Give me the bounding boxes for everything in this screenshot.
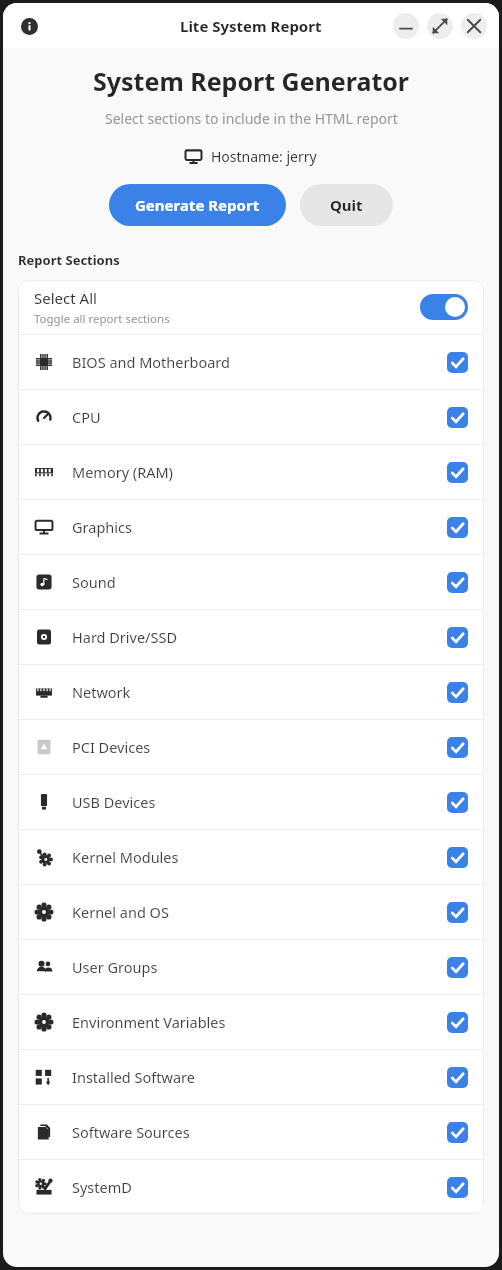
- staticText: Environment Variables: [72, 1012, 447, 1032]
- button[interactable]: Select all: [420, 294, 468, 320]
- button[interactable]: Included: [447, 627, 468, 648]
- button[interactable]: Included: [447, 737, 468, 758]
- staticText: Report Sections: [18, 251, 120, 269]
- button[interactable]: Quit: [300, 184, 393, 226]
- staticText: Graphics: [72, 517, 447, 537]
- button[interactable]: Included: [447, 902, 468, 923]
- button[interactable]: Included: [447, 1067, 468, 1088]
- staticText: Kernel and OS: [72, 902, 447, 922]
- button[interactable]: Included: [447, 1122, 468, 1143]
- staticText: Lite System Report: [180, 16, 322, 36]
- button[interactable]: Network: [18, 665, 484, 719]
- staticText: Select All: [34, 288, 97, 308]
- staticText: BIOS and Motherboard: [72, 352, 447, 372]
- staticText: Installed Software: [72, 1067, 447, 1087]
- button[interactable]: BIOS and Motherboard: [18, 335, 484, 389]
- staticText: Memory (RAM): [72, 462, 447, 482]
- button[interactable]: Generate Report: [109, 184, 286, 226]
- button[interactable]: PCI Devices: [18, 720, 484, 774]
- button[interactable]: Included: [447, 1012, 468, 1033]
- button[interactable]: Included: [447, 407, 468, 428]
- button[interactable]: Software Sources: [18, 1105, 484, 1159]
- button[interactable]: SystemD: [18, 1160, 484, 1214]
- button[interactable]: Maximize: [427, 13, 453, 39]
- button[interactable]: Memory (RAM): [18, 445, 484, 499]
- button[interactable]: Close: [461, 13, 487, 39]
- button[interactable]: Included: [447, 517, 468, 538]
- button[interactable]: Kernel Modules: [18, 830, 484, 884]
- staticText: Hostname: jerry: [211, 147, 317, 166]
- staticText: Select sections to include in the HTML r…: [105, 109, 398, 128]
- button[interactable]: USB Devices: [18, 775, 484, 829]
- button[interactable]: Hard Drive/SSD: [18, 610, 484, 664]
- staticText: SystemD: [72, 1177, 447, 1197]
- button[interactable]: Included: [447, 352, 468, 373]
- button[interactable]: User Groups: [18, 940, 484, 994]
- button[interactable]: Sound: [18, 555, 484, 609]
- staticText: PCI Devices: [72, 737, 447, 757]
- staticText: Software Sources: [72, 1122, 447, 1142]
- button[interactable]: Included: [447, 792, 468, 813]
- staticText: Kernel Modules: [72, 847, 447, 867]
- staticText: Toggle all report sections: [34, 311, 170, 327]
- button[interactable]: CPU: [18, 390, 484, 444]
- staticText: Network: [72, 682, 447, 702]
- button[interactable]: Kernel and OS: [18, 885, 484, 939]
- button[interactable]: Graphics: [18, 500, 484, 554]
- staticText: USB Devices: [72, 792, 447, 812]
- button[interactable]: Included: [447, 957, 468, 978]
- staticText: Hard Drive/SSD: [72, 627, 447, 647]
- staticText: Quit: [330, 195, 363, 215]
- staticText: User Groups: [72, 957, 447, 977]
- staticText: CPU: [72, 407, 447, 427]
- button[interactable]: Included: [447, 462, 468, 483]
- button[interactable]: Minimize: [393, 13, 419, 39]
- button[interactable]: About: [15, 12, 43, 40]
- button[interactable]: Included: [447, 847, 468, 868]
- staticText: Generate Report: [135, 195, 260, 215]
- staticText: Sound: [72, 572, 447, 592]
- button[interactable]: Included: [447, 572, 468, 593]
- button[interactable]: Included: [447, 682, 468, 703]
- button[interactable]: Environment Variables: [18, 995, 484, 1049]
- staticText: System Report Generator: [93, 64, 410, 98]
- button[interactable]: Select All: [18, 280, 484, 334]
- button[interactable]: Included: [447, 1177, 468, 1198]
- button[interactable]: Installed Software: [18, 1050, 484, 1104]
